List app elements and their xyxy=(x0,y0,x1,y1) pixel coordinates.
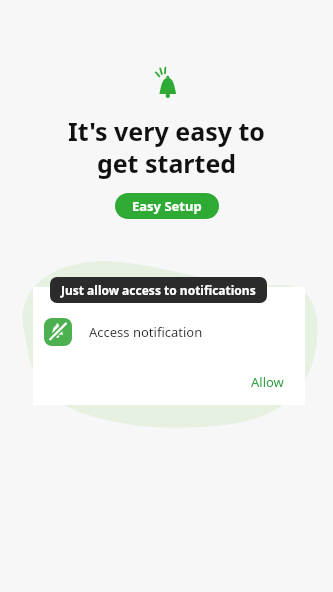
staticText: It's very easy to get started xyxy=(0,114,333,180)
staticText: Easy Setup xyxy=(132,197,202,215)
button[interactable]: Access notification xyxy=(33,318,305,346)
button[interactable]: Just allow access to notifications xyxy=(50,277,267,303)
button[interactable]: Allow xyxy=(230,367,305,397)
staticText: Just allow access to notifications xyxy=(61,282,256,298)
staticText: Access notification xyxy=(89,323,203,341)
button[interactable]: Easy Setup xyxy=(115,193,219,219)
staticText: Allow xyxy=(251,373,284,391)
